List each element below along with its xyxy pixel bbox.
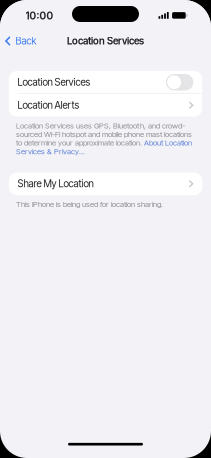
- staticText: sourced Wi-Fi hotspot and mobile phone m…: [16, 130, 192, 139]
- button[interactable]: Location Services: [9, 71, 202, 93]
- button[interactable]: Share My Location: [9, 172, 202, 195]
- staticText: Back: [16, 35, 37, 47]
- staticText: Location Services: [67, 35, 144, 47]
- button[interactable]: Location Alerts: [9, 94, 202, 116]
- staticText: 10:00: [25, 9, 53, 22]
- button[interactable]: Back: [0, 32, 43, 50]
- staticText: Location Services: [18, 76, 91, 88]
- button[interactable]: About Location: [144, 138, 192, 147]
- button[interactable]: Services & Privacy...: [16, 147, 85, 156]
- staticText: Location Alerts: [18, 99, 80, 111]
- staticText: Services & Privacy...: [16, 147, 85, 156]
- staticText: to determine your approximate location.: [16, 138, 144, 147]
- staticText: This iPhone is being used for location s…: [16, 199, 163, 209]
- staticText: Location Services uses GPS, Bluetooth, a…: [16, 121, 185, 130]
- staticText: About Location: [144, 138, 192, 147]
- staticText: Share My Location: [18, 178, 94, 190]
